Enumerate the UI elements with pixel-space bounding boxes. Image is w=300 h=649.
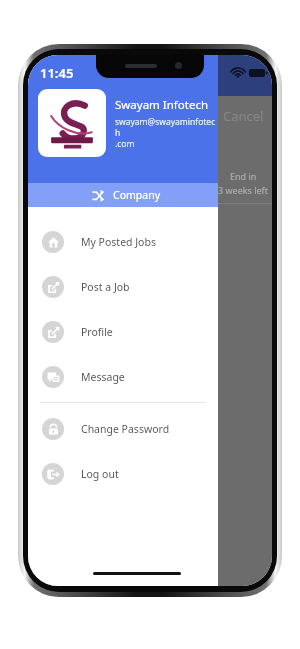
button[interactable]: Log out	[28, 451, 218, 496]
button[interactable]	[38, 89, 106, 157]
button[interactable]: Cancel	[214, 103, 272, 129]
other: Status icons	[227, 66, 271, 80]
staticText: Swayam Infotech	[115, 97, 209, 113]
staticText: swayam@swayaminfotech .com	[115, 116, 218, 149]
staticText: 3 weeks left	[218, 184, 268, 196]
button[interactable]: Message	[28, 354, 218, 399]
button[interactable]: Company	[28, 183, 218, 207]
staticText: My Posted Jobs	[81, 235, 156, 249]
button[interactable]: Post a Job	[28, 264, 218, 309]
staticText: Post a Job	[81, 280, 130, 294]
staticText: Cancel	[223, 107, 264, 125]
staticText: Log out	[81, 467, 119, 481]
staticText: Change Password	[81, 422, 170, 436]
button[interactable]: Profile	[28, 309, 218, 354]
button[interactable]: My Posted Jobs	[28, 219, 218, 264]
staticText: End in	[230, 170, 257, 182]
staticText: Profile	[81, 325, 113, 339]
staticText: Company	[113, 188, 160, 202]
staticText: 11:45	[40, 64, 74, 82]
staticText: Message	[81, 370, 125, 384]
button[interactable]: Change Password	[28, 406, 218, 451]
